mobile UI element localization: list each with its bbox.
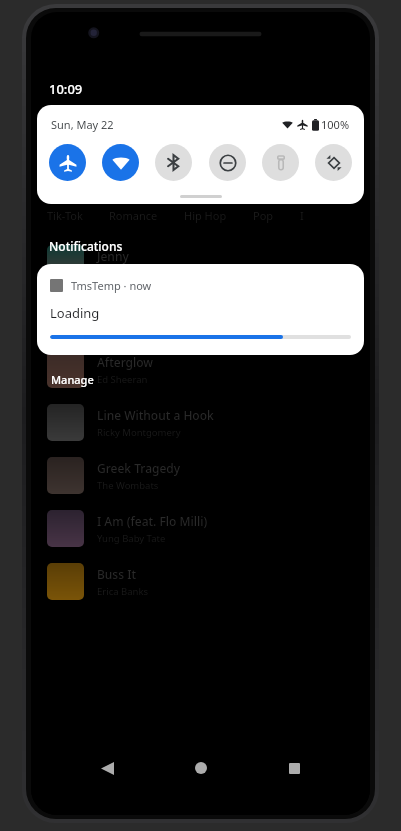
staticText: I Am (feat. Flo Milli): [97, 513, 208, 529]
button[interactable]: Afterglow: [31, 343, 370, 396]
button[interactable]: Flashlight: [262, 144, 299, 181]
button[interactable]: I Am (feat. Flo Milli): [31, 502, 370, 555]
button[interactable]: Opp Stoppa: [31, 290, 370, 343]
staticText: 100%: [321, 117, 350, 132]
button[interactable]: Wi-Fi: [102, 144, 139, 181]
button[interactable]: Auto-rotate: [315, 144, 352, 181]
staticText: Manage: [51, 372, 94, 387]
button[interactable]: Greek Tragedy: [31, 449, 370, 502]
button[interactable]: Home: [184, 751, 218, 785]
staticText: Notifications: [49, 238, 123, 254]
button[interactable]: Bluetooth: [155, 144, 192, 181]
staticText: Yung Baby Tate: [97, 532, 166, 545]
staticText: Pop: [253, 208, 274, 223]
staticText: The Wombats: [97, 479, 159, 492]
button[interactable]: TmsTemp · now: [37, 264, 364, 355]
button[interactable]: Recent apps: [277, 751, 311, 785]
staticText: Ed Sheeran: [97, 373, 148, 386]
staticText: Buss It: [97, 566, 137, 582]
button[interactable]: Manage: [49, 370, 96, 389]
staticText: Line Without a Hook: [97, 407, 214, 423]
staticText: Opp Stoppa: [97, 301, 165, 317]
staticText: Tik-Tok: [47, 208, 83, 223]
staticText: Sun, May 22: [51, 117, 114, 132]
button[interactable]: Line Without a Hook: [31, 396, 370, 449]
staticText: Loading: [50, 304, 100, 322]
staticText: Afterglow: [97, 354, 154, 370]
button[interactable]: Buss It: [31, 555, 370, 608]
staticText: Erica Banks: [97, 585, 149, 598]
staticText: Hip Hop: [184, 208, 227, 223]
staticText: 10:09: [49, 80, 83, 98]
button[interactable]: Airplane mode: [49, 144, 86, 181]
staticText: Greek Tragedy: [97, 460, 181, 476]
staticText: I: [300, 208, 304, 223]
button[interactable]: Do not disturb: [209, 144, 246, 181]
staticText: Jenny: [97, 248, 129, 264]
button[interactable]: Back: [90, 751, 124, 785]
staticText: Romance: [109, 208, 158, 223]
staticText: TmsTemp · now: [71, 278, 152, 293]
staticText: Ricky Montgomery: [97, 426, 181, 439]
button[interactable]: Jenny: [31, 237, 370, 290]
